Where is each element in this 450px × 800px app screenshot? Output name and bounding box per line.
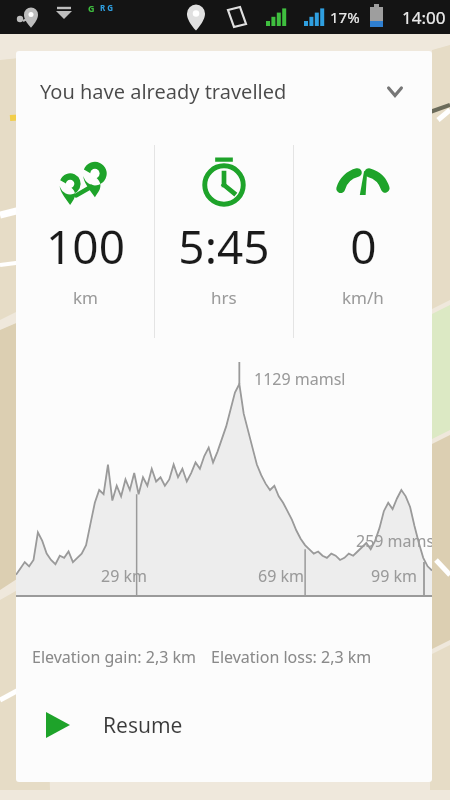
staticText: km/h [342,286,384,309]
staticText: 29 km [101,565,147,587]
staticText: hrs [211,286,237,309]
staticText: 5:45 [178,215,270,278]
staticText: 100 [46,215,125,278]
button[interactable]: 5:45 [155,131,293,356]
staticText: 17% [330,7,360,27]
staticText: 99 km [371,565,417,587]
staticText: 69 km [258,565,304,587]
staticText: 259 mamsl [356,530,432,552]
staticText: Resume [103,711,183,740]
staticText: Elevation gain: 2,3 km [32,646,197,668]
staticText: You have already travelled [40,78,287,105]
staticText: R G [100,2,114,13]
button[interactable]: 0 [294,131,432,356]
button[interactable]: 100 [16,131,154,356]
staticText: 0 [350,215,377,278]
staticText: km [73,286,98,309]
staticText: Elevation loss: 2,3 km [211,646,372,668]
staticText: 14:00 [402,6,446,29]
button[interactable]: Collapse [378,74,412,108]
button[interactable]: Resume [16,696,432,754]
button[interactable]: You have already travelled [16,51,432,131]
staticText: 1129 mamsl [254,368,346,390]
staticText: G [88,2,95,14]
